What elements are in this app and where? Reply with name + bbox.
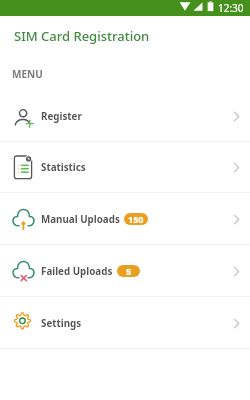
other: Statistics	[12, 155, 38, 181]
staticText: Register	[41, 110, 82, 123]
button[interactable]: Register	[0, 90, 250, 142]
staticText: Failed Uploads	[41, 265, 113, 278]
staticText: Statistics	[41, 161, 86, 174]
button[interactable]: Manual Uploads	[0, 193, 250, 245]
other: Register	[12, 103, 38, 129]
staticText: MENU	[12, 67, 43, 81]
button[interactable]: Statistics	[0, 142, 250, 193]
other: Manual Uploads	[12, 206, 38, 232]
staticText: Manual Uploads	[41, 213, 120, 226]
other: Failed Uploads	[12, 258, 38, 284]
other: Settings	[12, 310, 38, 336]
button[interactable]: Settings	[0, 297, 250, 349]
staticText: 5	[126, 265, 132, 277]
staticText: Settings	[41, 317, 82, 330]
staticText: SIM Card Registration	[14, 27, 150, 45]
staticText: 12:30	[218, 1, 244, 15]
button[interactable]: Failed Uploads	[0, 245, 250, 297]
staticText: 150	[128, 213, 144, 225]
